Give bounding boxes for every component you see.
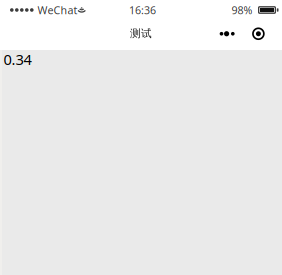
button[interactable]: Close xyxy=(252,27,265,40)
staticText: 0.34 xyxy=(3,49,31,69)
staticText: 测试 xyxy=(130,27,152,40)
staticText: 16:36 xyxy=(129,3,156,17)
staticText: WeChat xyxy=(38,3,78,17)
button[interactable]: More xyxy=(219,28,235,40)
staticText: 98% xyxy=(231,3,252,17)
